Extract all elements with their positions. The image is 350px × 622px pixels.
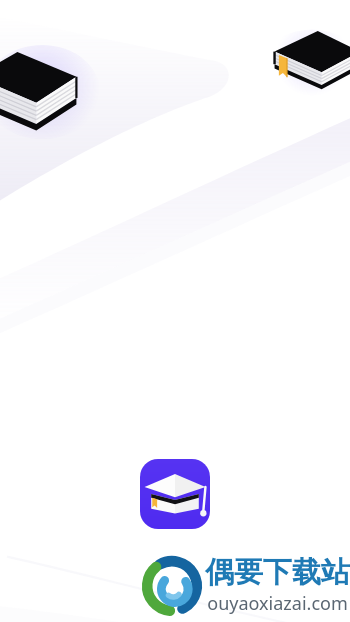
button[interactable]: Open app — [140, 459, 210, 529]
staticText: 偶要下载站 — [205, 554, 350, 591]
staticText: ouyaoxiazai.com — [207, 591, 348, 616]
